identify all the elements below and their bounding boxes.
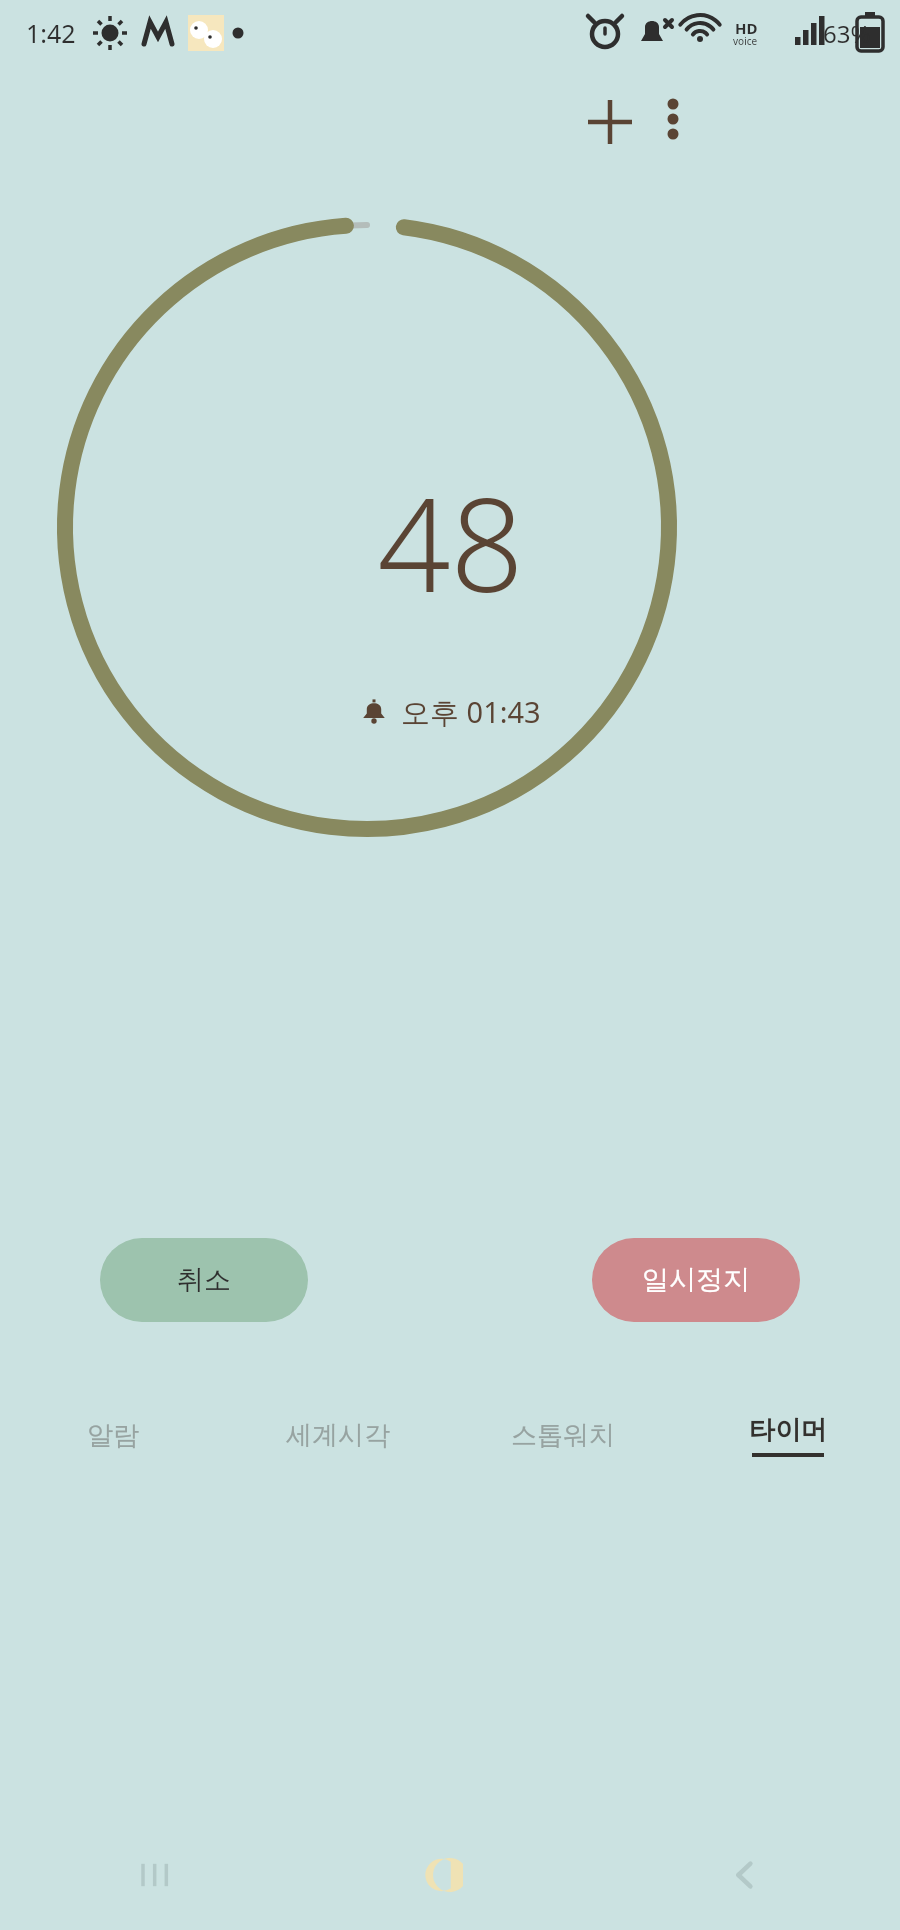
staticText: 알람 — [87, 1419, 139, 1452]
staticText: 1:42 — [26, 16, 76, 50]
button[interactable]: 알람 — [0, 1390, 225, 1480]
staticText: HD — [735, 18, 758, 38]
staticText: 오후 01:43 — [401, 692, 541, 732]
staticText: 취소 — [177, 1263, 231, 1297]
button[interactable]: 스톱워치 — [450, 1390, 675, 1480]
button[interactable]: 최근 앱 — [120, 1840, 190, 1910]
button[interactable]: 세계시각 — [225, 1390, 450, 1480]
staticText: 일시정지 — [642, 1263, 750, 1297]
staticText: 63% — [823, 17, 871, 50]
button[interactable]: 일시정지 — [592, 1238, 800, 1322]
button[interactable]: 타이머 — [675, 1390, 900, 1480]
button[interactable]: 타이머 추가 — [566, 78, 654, 166]
staticText: 세계시각 — [286, 1419, 390, 1452]
button[interactable]: 홈 — [415, 1840, 485, 1910]
button[interactable]: 취소 — [100, 1238, 308, 1322]
staticText: 스톱워치 — [511, 1419, 615, 1452]
staticText: 타이머 — [749, 1414, 827, 1447]
staticText: 48 — [377, 455, 524, 615]
staticText: voice — [733, 34, 758, 48]
button[interactable]: 뒤로 — [710, 1840, 780, 1910]
button[interactable]: 더보기 — [632, 78, 714, 160]
